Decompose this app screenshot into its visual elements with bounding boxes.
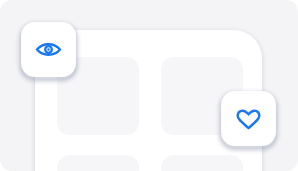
button[interactable]: Preview bbox=[21, 22, 76, 77]
button[interactable]: Favorite bbox=[221, 91, 276, 146]
